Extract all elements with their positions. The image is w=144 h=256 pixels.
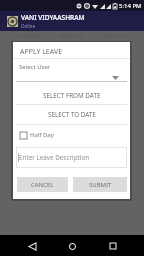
staticText: Enter Leave Description [19,153,90,162]
button[interactable]: SUBMIT [73,177,127,192]
button[interactable]: Select User [16,61,127,82]
staticText: VANI VIDYAASHRAM [21,13,85,22]
staticText: Select User [19,63,51,71]
button[interactable]: Back [23,237,41,255]
button[interactable]: CANCEL [17,177,68,192]
staticText: Half Day [30,131,54,139]
staticText: SELECT TO DATE [48,110,96,119]
staticText: SUBMIT [89,181,112,189]
staticText: 5:14 PM [119,2,142,10]
staticText: CANCEL [31,181,54,189]
staticText: Online [21,23,35,29]
staticText: SELECT FROM DATE [43,91,101,100]
staticText: APPLY LEAVE [20,47,63,57]
button[interactable]: Recent apps [104,237,122,255]
button[interactable]: Home [63,237,81,255]
button[interactable]: SELECT FROM DATE [13,86,130,104]
button[interactable]: Half Day [20,129,54,141]
button[interactable]: SELECT TO DATE [13,105,130,124]
button[interactable]: Enter Leave Description [16,147,127,168]
